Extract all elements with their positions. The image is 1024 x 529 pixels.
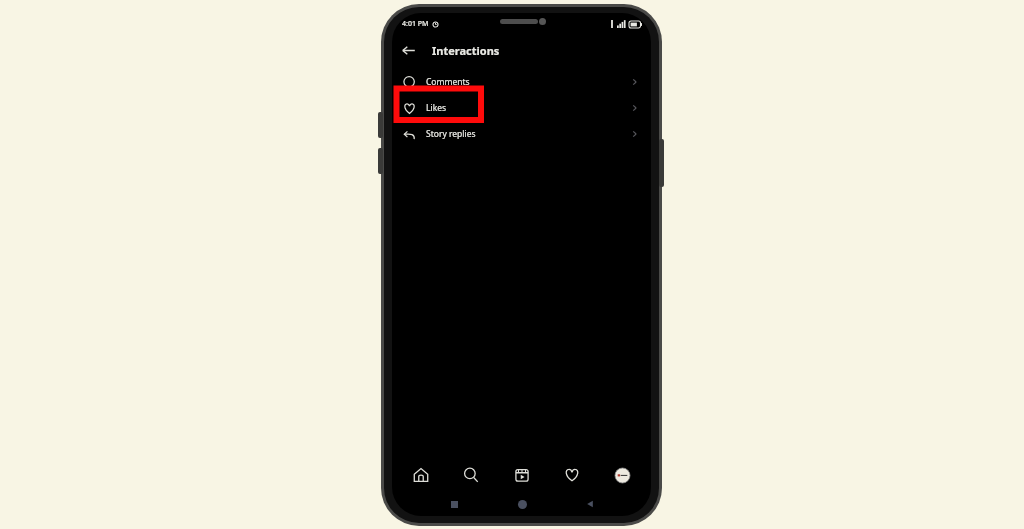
staticText: 4:01 PM [402,19,429,29]
button[interactable]: Activity [557,460,587,490]
staticText: Comments [426,76,470,88]
staticText: Likes [426,102,447,114]
button[interactable]: Home [505,492,539,516]
button[interactable]: Search [456,460,486,490]
button[interactable]: Reels [507,460,537,490]
button[interactable]: Comments [392,69,651,95]
staticText: Interactions [432,43,500,58]
staticText: Story replies [426,128,476,140]
button[interactable]: Profile [607,460,637,490]
button[interactable]: Back [392,35,424,65]
button[interactable]: Recents [437,492,471,516]
button[interactable]: Story replies [392,121,651,147]
button[interactable]: Home [406,460,436,490]
button[interactable]: Back [573,492,607,516]
button[interactable]: Likes [392,95,651,121]
